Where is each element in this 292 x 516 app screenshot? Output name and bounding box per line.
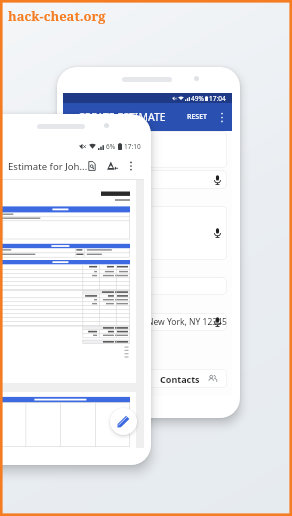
- staticText: hack-cheat.org: [8, 7, 106, 25]
- staticText: 17:04: [209, 94, 226, 103]
- staticText: 6%: [106, 142, 116, 151]
- button[interactable]: Preview: [82, 156, 102, 176]
- button[interactable]: Contacts: [68, 369, 227, 388]
- staticText: CREATE ESTIMATE: [78, 110, 166, 124]
- staticText: 1234 Main Street, New York, NY 12345: [75, 316, 227, 328]
- button[interactable]: RESET: [182, 106, 213, 128]
- button[interactable]: CREATE ESTIMATE: [63, 103, 232, 131]
- staticText: RESET: [187, 112, 208, 122]
- button[interactable]: More options: [213, 109, 230, 126]
- staticText: Estimate for Joh...: [8, 160, 88, 173]
- button[interactable]: 1234 Main Street, New York, NY 12345: [68, 313, 227, 331]
- button[interactable]: [68, 170, 227, 189]
- button[interactable]: [68, 277, 227, 295]
- staticText: 49%: [191, 94, 204, 103]
- button[interactable]: Back up to Drive: [102, 156, 122, 176]
- staticText: Contacts: [160, 373, 200, 385]
- button[interactable]: More options: [122, 157, 140, 175]
- button[interactable]: [68, 131, 227, 168]
- button[interactable]: [68, 206, 227, 260]
- button[interactable]: Edit: [110, 408, 137, 435]
- staticText: 17:10: [124, 142, 141, 151]
